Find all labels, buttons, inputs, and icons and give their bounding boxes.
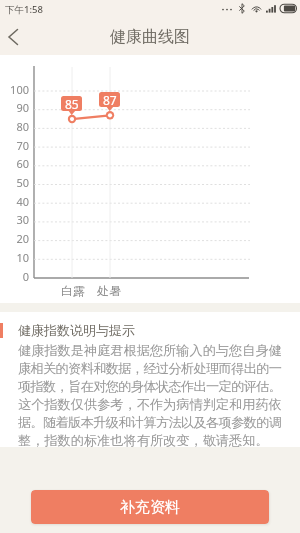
staticText: 补充资料 [120,498,180,517]
staticText: 100 [2,82,29,97]
staticText: 项指数，旨在对您的身体状态作出一定的评估。 [18,378,282,395]
staticText: 处暑 [94,283,124,298]
staticText: 40 [2,194,29,209]
staticText: 健康指数是神庭君根据您所输入的与您自身健 [18,342,282,359]
staticText: 85 [65,96,79,111]
staticText: 10 [2,250,29,265]
staticText: 健康指数说明与提示 [18,322,135,338]
staticText: 50 [2,175,29,190]
staticText: 白露 [58,283,88,298]
staticText: 70 [2,138,29,153]
button[interactable]: 补充资料 [31,490,269,524]
staticText: 这个指数仅供参考，不作为病情判定和用药依 [18,396,282,413]
staticText: 60 [2,156,29,171]
staticText: 康相关的资料和数据，经过分析处理而得出的一 [18,360,282,377]
staticText: 90 [2,100,29,115]
staticText: 20 [2,231,29,246]
staticText: 80 [2,119,29,134]
button[interactable]: Back [0,18,34,55]
staticText: 0 [2,269,29,284]
staticText: 30 [2,212,29,227]
staticText: 下午1:58 [5,3,43,16]
staticText: 87 [103,92,117,107]
staticText: 健康曲线图 [110,27,190,47]
staticText: 据。随着版本升级和计算方法以及各项参数的调 [18,414,282,431]
staticText: 整，指数的标准也将有所改变，敬请悉知。 [18,432,269,447]
